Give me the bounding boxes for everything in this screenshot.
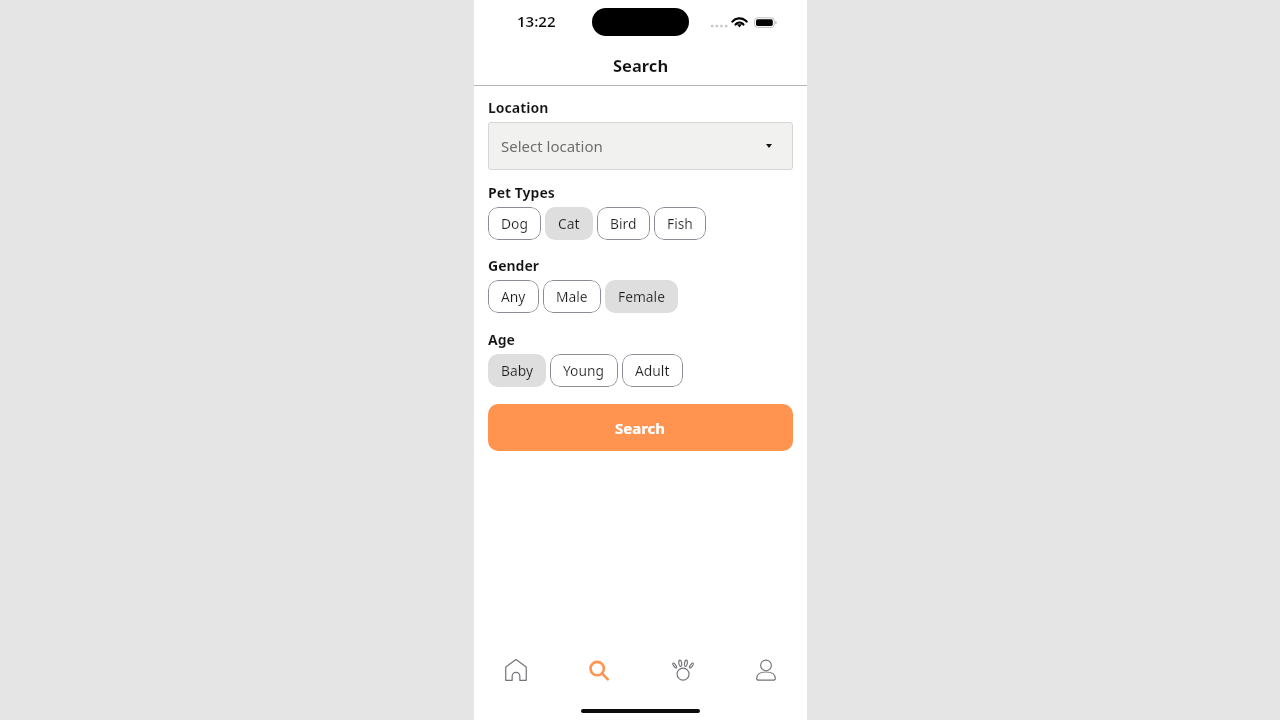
button[interactable]: Cat: [545, 207, 593, 240]
staticText: Dog: [501, 214, 528, 233]
staticText: Young: [563, 361, 605, 380]
staticText: Age: [488, 330, 515, 349]
staticText: Female: [618, 287, 665, 306]
staticText: Fish: [667, 214, 693, 233]
button[interactable]: Search: [558, 649, 641, 690]
button[interactable]: Young: [550, 354, 618, 387]
staticText: Bird: [610, 214, 637, 233]
staticText: Gender: [488, 256, 540, 275]
button[interactable]: Male: [543, 280, 601, 313]
staticText: Male: [556, 287, 588, 306]
staticText: Location: [488, 98, 549, 117]
button[interactable]: Fish: [654, 207, 706, 240]
button[interactable]: Baby: [488, 354, 546, 387]
button[interactable]: Dog: [488, 207, 541, 240]
staticText: Search: [615, 418, 666, 438]
button[interactable]: Female: [605, 280, 678, 313]
button[interactable]: Bird: [597, 207, 650, 240]
button[interactable]: Pets: [641, 649, 724, 690]
staticText: 13:22: [517, 11, 556, 31]
staticText: Adult: [635, 361, 670, 380]
button[interactable]: Search: [488, 404, 793, 451]
staticText: Baby: [501, 361, 533, 380]
staticText: Any: [501, 287, 526, 306]
button[interactable]: Select location: [488, 122, 793, 170]
button[interactable]: Adult: [622, 354, 683, 387]
button[interactable]: Profile: [724, 649, 807, 690]
staticText: Pet Types: [488, 183, 555, 202]
staticText: Search: [613, 54, 669, 76]
staticText: Cat: [558, 214, 580, 233]
staticText: Select location: [501, 136, 603, 156]
button[interactable]: Any: [488, 280, 539, 313]
button[interactable]: Home: [474, 649, 558, 690]
